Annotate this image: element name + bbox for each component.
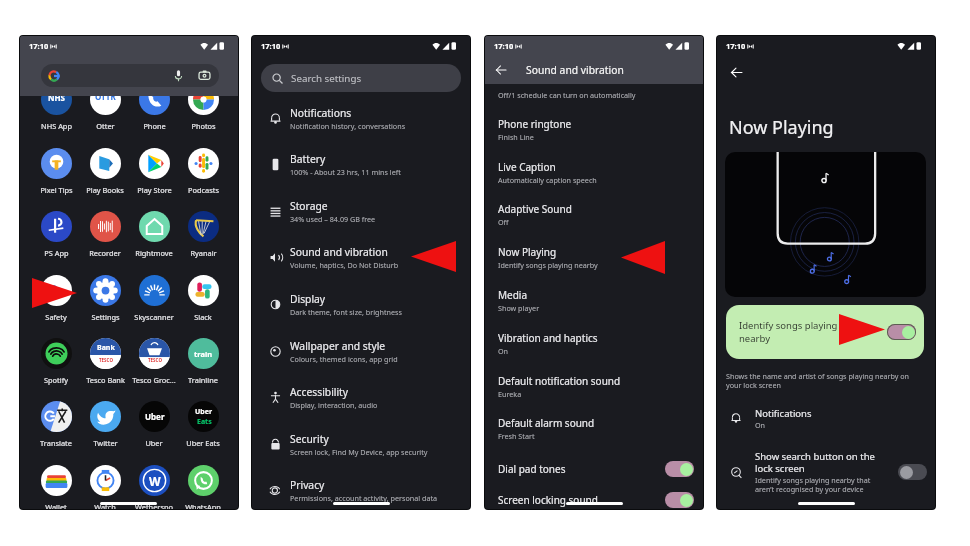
staticText: PS App — [44, 248, 69, 258]
button[interactable]: Notifications — [252, 101, 470, 135]
button[interactable]: Podcasts — [179, 148, 227, 195]
staticText: Phone — [143, 121, 166, 131]
button[interactable]: Watch — [81, 465, 129, 509]
button[interactable]: Back — [723, 59, 749, 85]
other: Pointer to Sound and vibration — [411, 241, 456, 272]
button[interactable]: Battery — [252, 147, 470, 181]
staticText: train — [194, 349, 213, 359]
staticText: Sound and vibration — [526, 63, 624, 77]
staticText: TESCO — [99, 357, 113, 363]
button[interactable]: Phone — [130, 96, 178, 131]
staticText: Uber — [145, 411, 165, 422]
button[interactable]: Identify songs playing nearby — [726, 305, 924, 359]
button[interactable]: Adaptive Sound — [498, 202, 703, 227]
button[interactable]: Media — [498, 288, 703, 313]
button[interactable]: Uber — [179, 401, 227, 448]
staticText: 17:10 — [261, 41, 281, 51]
button[interactable]: Uber — [130, 401, 178, 448]
button[interactable]: Wallet — [32, 465, 80, 509]
staticText: Tesco Bank — [86, 375, 125, 385]
staticText: Trainline — [188, 375, 218, 385]
button[interactable]: Display — [252, 287, 470, 321]
button[interactable]: Show search button on the lock screen — [717, 448, 935, 496]
staticText: Tesco Groc... — [132, 375, 176, 385]
button[interactable]: Play Books — [81, 148, 129, 195]
button[interactable]: Storage — [252, 194, 470, 228]
button[interactable]: Off — [898, 464, 927, 480]
button[interactable]: Bank — [81, 338, 129, 385]
staticText: Show player — [498, 303, 540, 313]
staticText: Uber — [145, 438, 163, 448]
button[interactable]: Rightmove — [130, 211, 178, 258]
button[interactable]: PS App — [32, 211, 80, 258]
staticText: Identify songs playing nearby — [739, 319, 838, 345]
button[interactable]: Live Caption — [498, 160, 703, 185]
button[interactable]: WhatsApp — [179, 465, 227, 509]
button[interactable]: Recorder — [81, 211, 129, 258]
staticText: Play Books — [86, 185, 124, 195]
button[interactable]: Photos — [179, 96, 227, 131]
button[interactable]: Safety — [32, 275, 80, 322]
button[interactable]: Wallpaper and style — [252, 334, 470, 368]
other: Google Lens — [198, 69, 211, 82]
button[interactable]: Accessibility — [252, 380, 470, 414]
button[interactable]: Skyscanner — [130, 275, 178, 322]
button[interactable]: Security — [252, 427, 470, 461]
button[interactable]: On — [665, 492, 694, 508]
button[interactable]: W — [130, 465, 178, 509]
staticText: NHS App — [41, 121, 72, 131]
staticText: 34% used – 84.09 GB free — [290, 214, 376, 224]
staticText: Photos — [191, 121, 216, 131]
staticText: Display — [290, 292, 326, 306]
staticText: Recorder — [89, 248, 121, 258]
other: Pointer to Safety — [32, 278, 77, 308]
staticText: Volume, haptics, Do Not Disturb — [290, 260, 399, 270]
staticText: Finish Line — [498, 132, 534, 142]
staticText: Now Playing — [729, 115, 834, 140]
button[interactable]: Dial pad tones — [485, 458, 703, 480]
staticText: Default alarm sound — [498, 416, 595, 430]
button[interactable]: Notifications — [717, 404, 935, 432]
staticText: Translate — [40, 438, 72, 448]
button[interactable]: Privacy — [252, 473, 470, 507]
button[interactable]: Translate — [32, 401, 80, 448]
button[interactable]: Voice search — [41, 64, 219, 87]
button[interactable]: Back — [485, 56, 516, 84]
other: Pointer to toggle — [839, 314, 885, 345]
button[interactable]: Spotify — [32, 338, 80, 385]
button[interactable]: Vibration and haptics — [498, 331, 703, 356]
button[interactable]: Sound and vibration — [252, 240, 470, 274]
button[interactable]: On — [665, 461, 694, 477]
button[interactable]: On — [887, 324, 916, 340]
staticText: Show search button on the lock screen — [755, 450, 875, 475]
button[interactable]: Slack — [179, 275, 227, 322]
staticText: Podcasts — [188, 185, 219, 195]
button[interactable]: Default notification sound — [498, 374, 703, 399]
staticText: Wetherspo — [135, 502, 173, 509]
button[interactable]: Twitter — [81, 401, 129, 448]
button[interactable]: Ryanair — [179, 211, 227, 258]
staticText: Dial pad tones — [498, 462, 566, 476]
staticText: Storage — [290, 199, 328, 213]
button[interactable]: Play Store — [130, 148, 178, 195]
button[interactable]: Phone ringtone — [498, 117, 703, 142]
staticText: Fresh Start — [498, 431, 535, 441]
button[interactable]: Pixel Tips — [32, 148, 80, 195]
button[interactable]: Search settings — [261, 64, 461, 92]
button[interactable]: OTTR — [81, 96, 129, 131]
staticText: Safety — [45, 312, 67, 322]
button[interactable]: Default alarm sound — [498, 416, 703, 441]
button[interactable]: TESCO — [130, 338, 178, 385]
button[interactable]: train — [179, 338, 227, 385]
button[interactable]: Screen locking sound — [485, 489, 703, 509]
button[interactable]: Now Playing — [498, 245, 703, 270]
staticText: Slack — [194, 312, 212, 322]
button[interactable]: Settings — [81, 275, 129, 322]
staticText: Uber Eats — [186, 438, 220, 448]
button[interactable]: NHS — [32, 96, 80, 131]
staticText: Skyscanner — [134, 312, 174, 322]
staticText: Off — [498, 217, 509, 227]
staticText: Automatically caption speech — [498, 175, 597, 185]
staticText: Rightmove — [135, 248, 173, 258]
staticText: Battery — [290, 152, 326, 166]
